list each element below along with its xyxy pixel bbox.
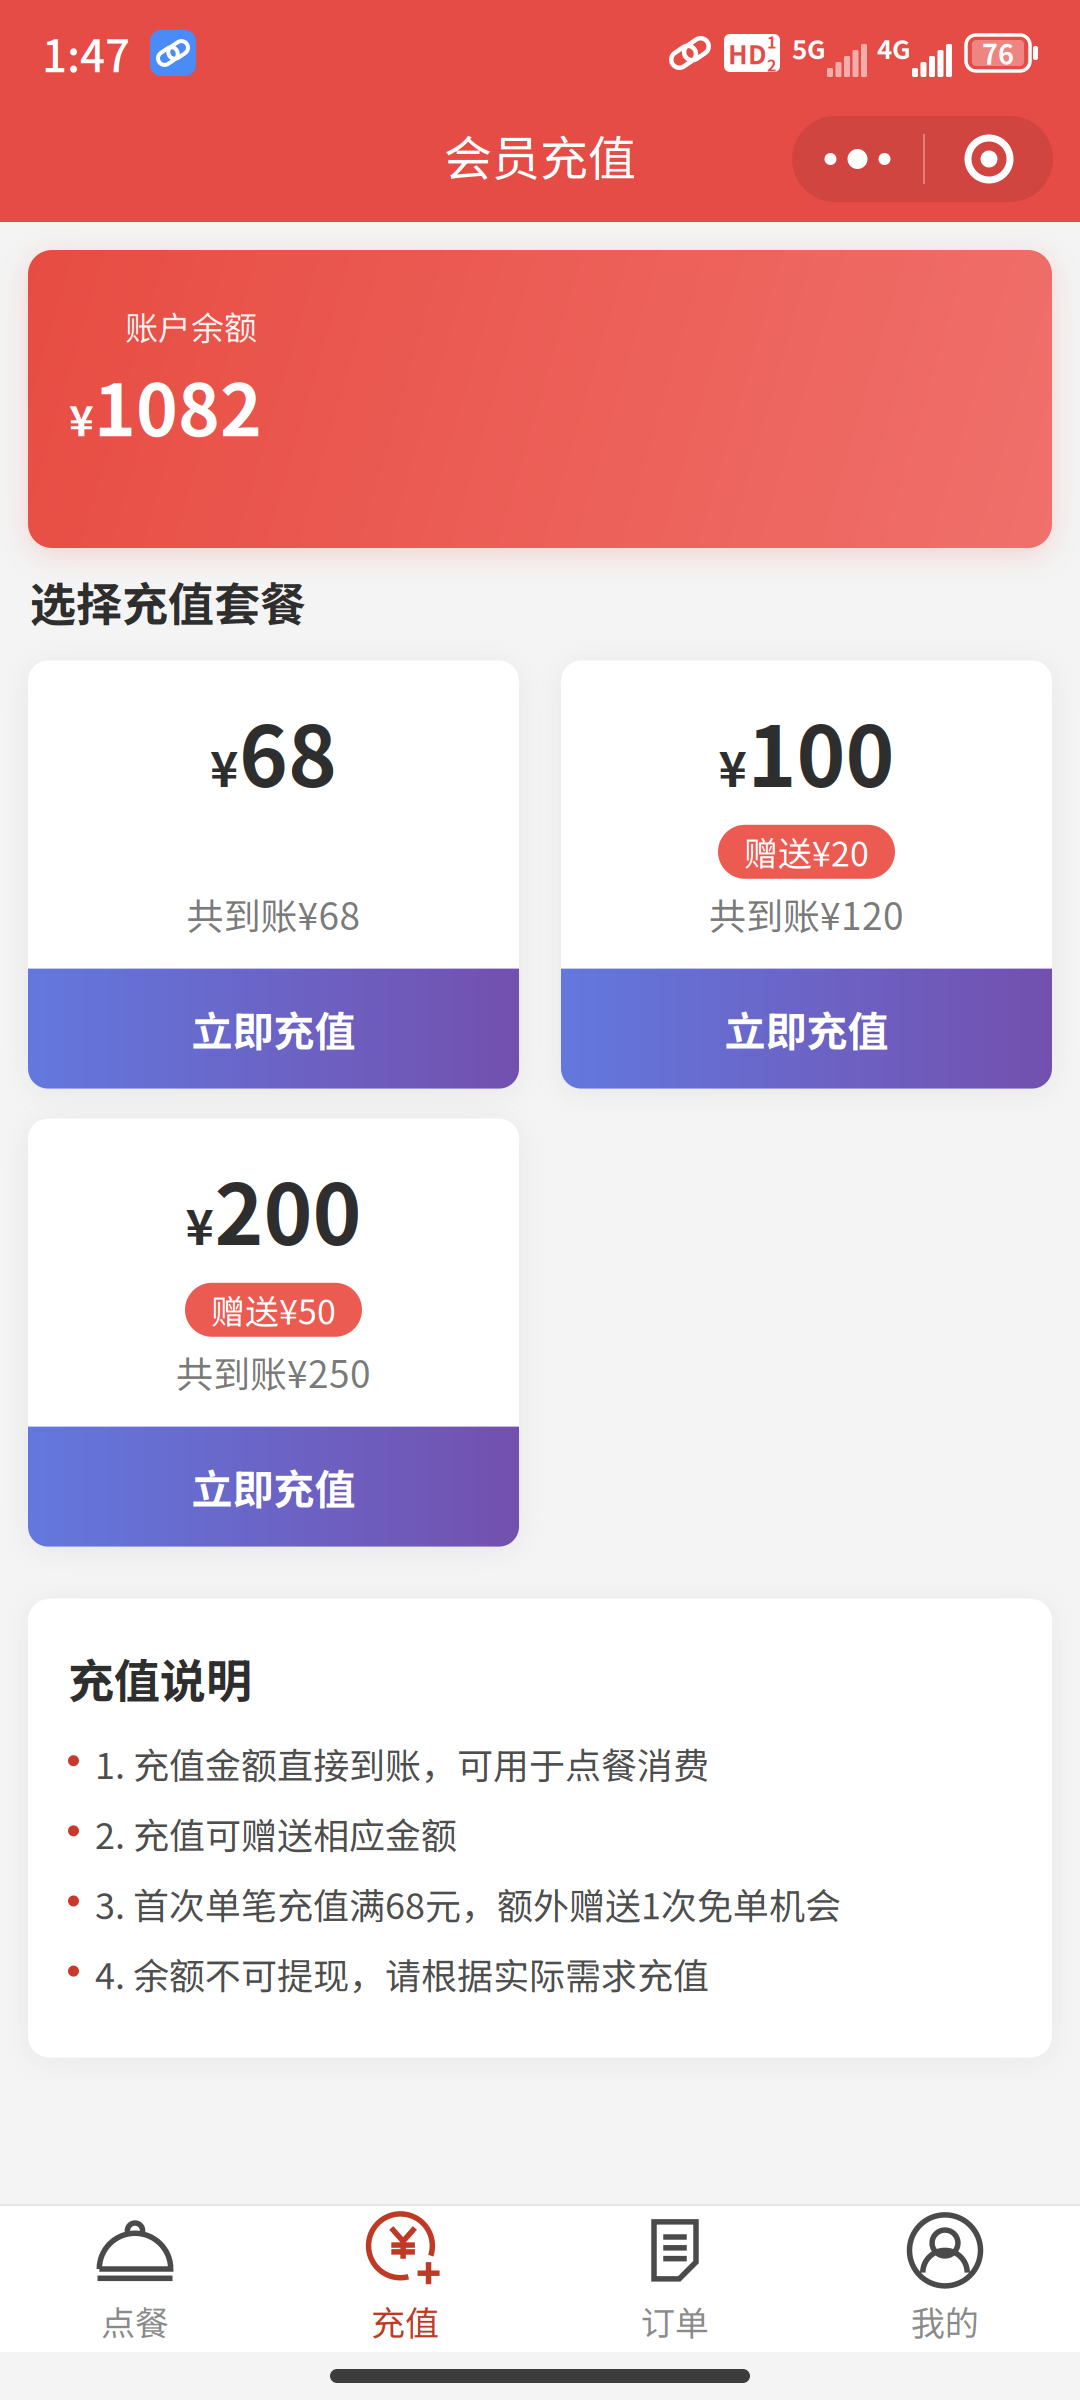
staticText: ¥ xyxy=(185,1189,213,1259)
staticText: 2. 充值可赠送相应金额 xyxy=(95,1807,457,1859)
staticText: 2 xyxy=(767,53,776,76)
staticText: 4G xyxy=(877,29,911,67)
staticText: 共到账¥68 xyxy=(186,887,360,941)
staticText: 共到账¥120 xyxy=(709,887,904,941)
button[interactable]: More xyxy=(792,116,923,202)
button[interactable]: 点餐 xyxy=(0,2206,270,2352)
staticText: 立即充值 xyxy=(724,999,888,1058)
staticText: 3. 首次单笔充值满68元，额外赠送1次免单机会 xyxy=(95,1877,841,1930)
staticText: 76 xyxy=(982,33,1014,73)
staticText: 选择充值套餐 xyxy=(30,568,306,635)
staticText: 68 xyxy=(239,691,337,811)
button[interactable]: ¥ xyxy=(561,661,1052,1089)
staticText: 点餐 xyxy=(101,2296,169,2346)
staticText: 5G xyxy=(792,29,826,67)
staticText: 我的 xyxy=(911,2296,979,2346)
staticText: 共到账¥250 xyxy=(176,1345,371,1399)
button[interactable]: ¥ xyxy=(28,1119,519,1547)
staticText: 1 xyxy=(767,30,776,53)
staticText: 200 xyxy=(214,1149,361,1269)
button[interactable]: 订单 xyxy=(540,2206,810,2352)
staticText: 订单 xyxy=(641,2296,709,2346)
staticText: 4. 余额不可提现，请根据实际需求充值 xyxy=(95,1948,709,2000)
staticText: 会员充值 xyxy=(444,120,636,190)
staticText: 立即充值 xyxy=(191,1457,355,1516)
staticText: 1:47 xyxy=(42,21,130,85)
staticText: ¥ xyxy=(718,731,746,801)
staticText: 1082 xyxy=(94,354,262,457)
staticText: 立即充值 xyxy=(191,999,355,1058)
staticText: 充值说明 xyxy=(68,1645,252,1711)
button[interactable]: Close mini program xyxy=(925,116,1053,202)
staticText: 赠送¥50 xyxy=(211,1285,336,1334)
button[interactable]: 我的 xyxy=(810,2206,1080,2352)
button[interactable]: 充值 xyxy=(270,2206,540,2352)
staticText: HD xyxy=(728,34,767,72)
staticText: 100 xyxy=(747,691,894,811)
staticText: ¥ xyxy=(69,387,94,448)
staticText: 账户余额 xyxy=(125,302,257,350)
staticText: ¥ xyxy=(210,731,238,801)
staticText: 充值 xyxy=(371,2296,439,2346)
staticText: 赠送¥20 xyxy=(744,827,869,876)
staticText: 1. 充值金额直接到账，可用于点餐消费 xyxy=(95,1737,709,1789)
button[interactable]: ¥ xyxy=(28,661,519,1089)
